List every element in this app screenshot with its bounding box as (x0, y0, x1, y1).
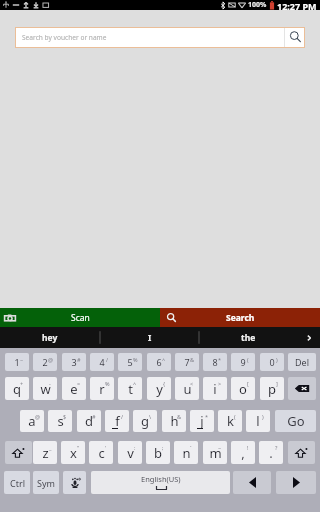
staticText: & (190, 356, 195, 363)
button[interactable]: v (118, 441, 142, 464)
staticText: ; (162, 444, 164, 451)
staticText: y (156, 380, 163, 398)
staticText: i (213, 380, 217, 398)
staticText: - (49, 380, 51, 387)
staticText: 9 (240, 356, 246, 368)
staticText: 2 (42, 356, 48, 368)
staticText: 3 (71, 356, 77, 368)
button[interactable]: j (190, 410, 214, 432)
button[interactable]: Voice input (63, 471, 86, 494)
button[interactable]: c (89, 441, 113, 464)
button[interactable]: shift (288, 441, 315, 464)
staticText: > (218, 380, 222, 387)
staticText: o (239, 380, 247, 398)
button[interactable]: More suggestions (298, 327, 320, 348)
button[interactable]: r (90, 377, 114, 400)
staticText: ~ (20, 356, 24, 363)
button[interactable]: e (62, 377, 86, 400)
button[interactable]: i (203, 377, 227, 400)
staticText: [ (247, 380, 249, 387)
button[interactable]: . (259, 441, 283, 464)
button[interactable]: Del (288, 353, 316, 371)
staticText: ~ (218, 444, 222, 451)
button[interactable]: b (146, 441, 170, 464)
staticText: 7 (184, 356, 190, 368)
button[interactable]: g (133, 410, 157, 432)
staticText: { (163, 380, 166, 387)
button[interactable]: z (33, 441, 57, 464)
staticText: # (77, 356, 81, 363)
button[interactable]: a (20, 410, 44, 432)
staticText: Search by voucher or name (22, 33, 107, 42)
button[interactable]: s (48, 410, 72, 432)
button[interactable]: f (105, 410, 129, 432)
staticText: ? (275, 444, 278, 451)
button[interactable]: 5 (118, 353, 142, 371)
staticText: 8 (212, 356, 218, 368)
button[interactable]: the (199, 327, 298, 348)
button[interactable]: Search (284, 27, 305, 48)
button[interactable]: y (147, 377, 171, 400)
staticText: / (121, 413, 124, 420)
button[interactable]: l (246, 410, 270, 432)
button[interactable]: Search (160, 308, 320, 327)
button[interactable]: hey (0, 327, 100, 348)
staticText: ) (276, 356, 278, 363)
button[interactable]: 7 (175, 353, 199, 371)
staticText: ) (262, 413, 264, 420)
button[interactable]: English(US) (91, 471, 230, 494)
button[interactable]: d (77, 410, 101, 432)
button[interactable]: 3 (62, 353, 86, 371)
button[interactable]: 9 (231, 353, 255, 371)
staticText: l (256, 412, 260, 430)
staticText: ( (234, 413, 236, 420)
staticText: e (70, 380, 78, 398)
button[interactable]: Search by voucher or name (15, 27, 305, 48)
button[interactable]: 4 (90, 353, 114, 371)
button[interactable]: Move right (276, 471, 316, 494)
button[interactable]: u (175, 377, 199, 400)
button[interactable]: I (100, 327, 199, 348)
staticText: b (154, 444, 162, 462)
button[interactable]: h (162, 410, 186, 432)
button[interactable]: 2 (33, 353, 57, 371)
button[interactable]: Move left (233, 471, 271, 494)
staticText: 6 (156, 356, 162, 368)
button[interactable]: k (218, 410, 242, 432)
staticText: = (77, 380, 81, 387)
button[interactable]: backspace (288, 377, 316, 400)
button[interactable]: Sym (33, 471, 59, 494)
button[interactable]: shift (5, 441, 32, 464)
button[interactable]: x (61, 441, 85, 464)
button[interactable]: w (33, 377, 57, 400)
button[interactable]: , (231, 441, 255, 464)
staticText: _ (49, 444, 52, 451)
button[interactable]: 1 (5, 353, 29, 371)
staticText: r (99, 380, 105, 398)
button[interactable]: q (5, 377, 29, 400)
button[interactable]: 8 (203, 353, 227, 371)
staticText: " (77, 444, 80, 451)
staticText: s (57, 412, 64, 430)
staticText: j (200, 412, 204, 430)
staticText: Search (226, 312, 255, 324)
staticText: @ (48, 356, 53, 363)
staticText: * (205, 413, 209, 420)
staticText: p (268, 380, 276, 398)
button[interactable]: m (203, 441, 227, 464)
button[interactable]: Scan (0, 308, 160, 327)
staticText: ^ (162, 356, 166, 363)
button[interactable]: 0 (260, 353, 284, 371)
button[interactable]: n (174, 441, 198, 464)
staticText: Sym (37, 477, 55, 489)
staticText: 100% (248, 0, 267, 10)
button[interactable]: 6 (147, 353, 171, 371)
button[interactable]: t (118, 377, 142, 400)
staticText: 1 (14, 356, 20, 368)
button[interactable]: Go (275, 410, 316, 432)
staticText: 4 (99, 356, 105, 368)
button[interactable]: Ctrl (4, 471, 30, 494)
staticText: ^ (133, 380, 137, 387)
button[interactable]: p (260, 377, 284, 400)
button[interactable]: o (231, 377, 255, 400)
